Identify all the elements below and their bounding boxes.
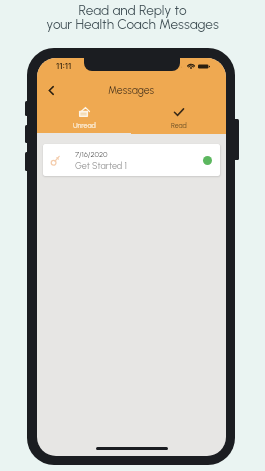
button[interactable]: Unread	[37, 103, 131, 129]
staticText: 7/16/2020	[75, 150, 108, 159]
staticText: Messages	[108, 84, 155, 97]
staticText: Read and Reply to your Health Coach Mess…	[0, 2, 265, 32]
button[interactable]: 7/16/2020	[43, 144, 220, 176]
staticText: Read	[171, 121, 187, 129]
staticText: Unread	[73, 121, 96, 129]
staticText: 11:11	[56, 62, 72, 71]
staticText: Get Started 1	[75, 160, 127, 171]
button[interactable]: Back	[40, 79, 62, 101]
button[interactable]: Read	[131, 103, 226, 129]
